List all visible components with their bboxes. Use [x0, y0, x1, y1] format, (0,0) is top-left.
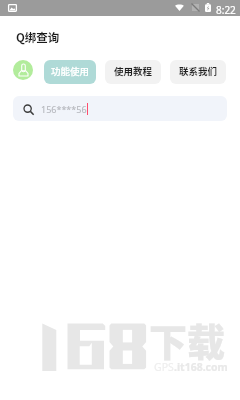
button[interactable]: 使用教程: [105, 60, 161, 84]
staticText: 功能使用: [51, 64, 90, 78]
button[interactable]: 156****56: [13, 96, 227, 121]
staticText: 使用教程: [114, 64, 153, 78]
staticText: .it168.com: [174, 360, 228, 374]
staticText: 联系我们: [179, 64, 218, 78]
staticText: 156****56: [41, 103, 87, 115]
button[interactable]: User profile: [13, 60, 33, 80]
button[interactable]: 功能使用: [44, 60, 96, 84]
staticText: Q绑查询: [16, 29, 60, 46]
staticText: 下载: [149, 312, 226, 367]
button[interactable]: 联系我们: [170, 60, 226, 84]
staticText: GPS: [154, 360, 174, 374]
staticText: 8:22: [216, 3, 236, 17]
